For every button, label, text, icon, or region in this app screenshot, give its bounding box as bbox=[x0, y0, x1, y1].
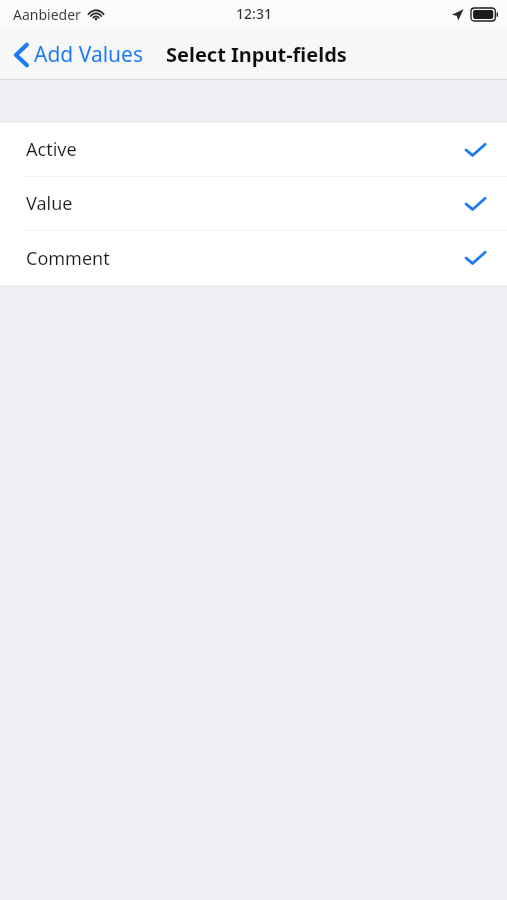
button[interactable]: Active bbox=[0, 123, 507, 177]
staticText: Value bbox=[26, 191, 73, 216]
staticText: 12:31 bbox=[236, 4, 272, 23]
button[interactable]: Back bbox=[0, 34, 153, 75]
staticText: Comment bbox=[26, 246, 110, 271]
button[interactable]: Comment bbox=[0, 231, 507, 285]
staticText: Add Values bbox=[34, 40, 143, 69]
other: Back bbox=[14, 43, 28, 67]
staticText: Select Input-fields bbox=[166, 41, 347, 68]
staticText: Aanbieder bbox=[13, 5, 81, 24]
staticText: Active bbox=[26, 137, 77, 162]
button[interactable]: Value bbox=[0, 177, 507, 231]
